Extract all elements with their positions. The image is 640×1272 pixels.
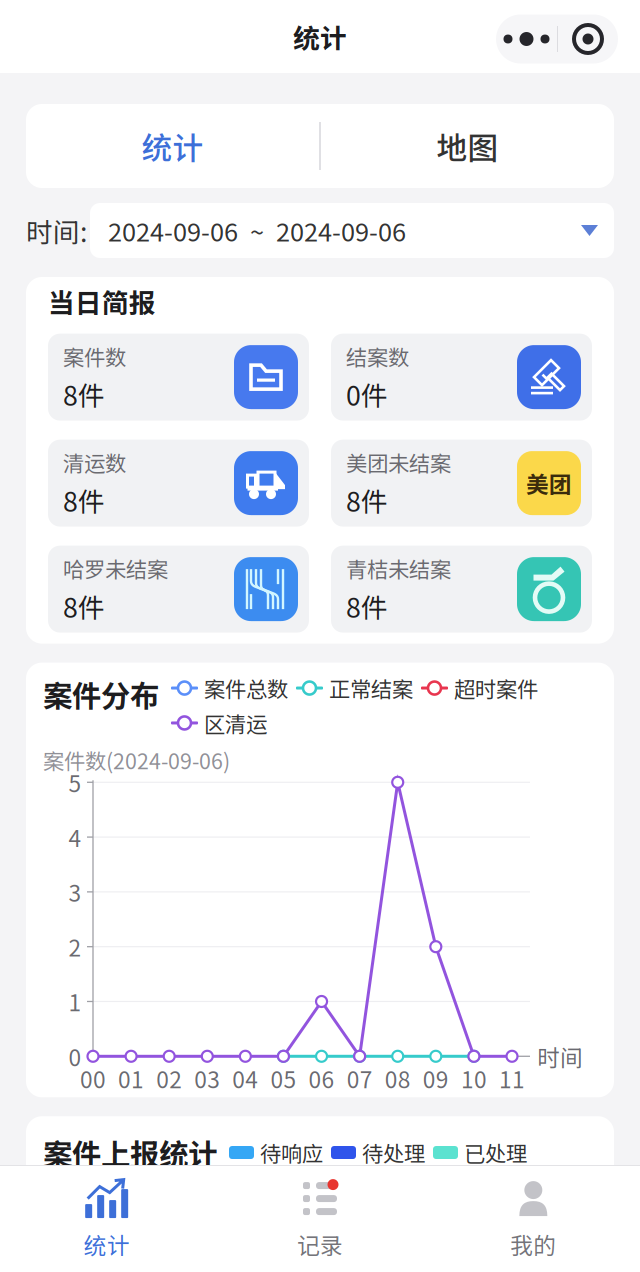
staticText: 区清运 xyxy=(204,707,267,738)
staticText: 超时案件 xyxy=(454,673,538,703)
staticText: 5 xyxy=(68,766,81,799)
staticText: 案件总数 xyxy=(204,673,288,703)
button[interactable]: More options xyxy=(496,9,618,63)
button[interactable]: 统计 xyxy=(0,1166,213,1272)
button[interactable]: 我的 xyxy=(427,1166,640,1272)
staticText: 美团 xyxy=(526,467,572,499)
staticText: 2024-09-06 ~ 2024-09-06 xyxy=(108,212,406,249)
staticText: 02 xyxy=(156,1062,182,1095)
staticText: 待响应 xyxy=(260,1137,323,1168)
staticText: 正常结案 xyxy=(329,673,413,703)
staticText: 统计 xyxy=(84,1228,130,1260)
staticText: 09 xyxy=(423,1062,449,1095)
staticText: 已处理 xyxy=(464,1137,527,1168)
staticText: 2 xyxy=(68,930,81,963)
staticText: 清运数 xyxy=(63,447,126,478)
staticText: 8件 xyxy=(63,375,105,413)
staticText: 地图 xyxy=(436,124,498,168)
staticText: 统计 xyxy=(293,17,347,56)
staticText: 案件上报统计 xyxy=(43,1131,217,1174)
staticText: 07 xyxy=(347,1062,373,1095)
staticText: 03 xyxy=(194,1062,220,1095)
staticText: 08 xyxy=(385,1062,411,1095)
staticText: 时间 xyxy=(537,1040,583,1073)
staticText: 11 xyxy=(499,1062,525,1095)
staticText: 04 xyxy=(232,1062,258,1095)
staticText: 4 xyxy=(68,821,81,853)
staticText: 结案数 xyxy=(346,341,409,372)
staticText: 哈罗未结案 xyxy=(63,553,168,584)
staticText: 3 xyxy=(68,875,81,908)
staticText: 0 xyxy=(68,1040,81,1073)
button[interactable]: 美团未结案 xyxy=(331,440,592,527)
staticText: 8件 xyxy=(346,587,388,625)
staticText: 记录 xyxy=(297,1228,343,1260)
staticText: 0件 xyxy=(346,375,388,413)
staticText: 我的 xyxy=(510,1228,556,1260)
staticText: 1 xyxy=(68,985,81,1018)
staticText: 青桔未结案 xyxy=(346,553,451,584)
staticText: 10 xyxy=(461,1062,487,1095)
staticText: 时间: xyxy=(26,211,87,250)
staticText: 05 xyxy=(270,1062,296,1095)
staticText: 统计 xyxy=(141,124,203,168)
staticText: 8件 xyxy=(63,481,105,519)
staticText: 待处理 xyxy=(362,1137,425,1168)
button[interactable]: 地图 xyxy=(321,104,614,188)
staticText: 06 xyxy=(308,1062,334,1095)
staticText: 00 xyxy=(80,1062,106,1095)
staticText: 01 xyxy=(118,1062,144,1095)
button[interactable]: 青桔未结案 xyxy=(331,546,592,633)
button[interactable]: 哈罗未结案 xyxy=(48,546,309,633)
staticText: 8件 xyxy=(346,481,388,519)
button[interactable]: 清运数 xyxy=(48,440,309,527)
staticText: 案件数(2024-09-06) xyxy=(43,744,230,775)
staticText: 当日简报 xyxy=(48,282,156,321)
staticText: 案件分布 xyxy=(43,673,159,715)
button[interactable]: 2024-09-06 ~ 2024-09-06 xyxy=(90,203,614,258)
button[interactable]: 统计 xyxy=(26,104,319,188)
button[interactable]: 结案数 xyxy=(331,334,592,421)
staticText: 案件数 xyxy=(63,341,126,372)
button[interactable]: 案件数 xyxy=(48,334,309,421)
staticText: 美团未结案 xyxy=(346,447,451,478)
staticText: 8件 xyxy=(63,587,105,625)
button[interactable]: 记录 xyxy=(213,1166,427,1272)
